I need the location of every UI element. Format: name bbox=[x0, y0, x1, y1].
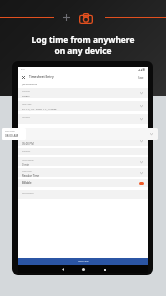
staticText: Job Reference bbox=[22, 83, 38, 86]
staticText: 9:41 bbox=[21, 68, 25, 71]
staticText: Start Time bbox=[5, 130, 15, 133]
staticText: Log time from anywhere on any device bbox=[0, 34, 166, 56]
button[interactable]: Close bbox=[21, 75, 26, 80]
button[interactable]: Payment bbox=[18, 148, 148, 155]
button[interactable]: Location bbox=[18, 114, 148, 124]
staticText: Location bbox=[22, 116, 31, 119]
staticText: Contract bbox=[22, 90, 31, 93]
button[interactable]: End Time bbox=[18, 136, 148, 146]
button[interactable]: Time Type bbox=[18, 168, 148, 177]
staticText: 05:00 PM bbox=[22, 142, 34, 146]
other: Camera bbox=[79, 13, 93, 24]
staticText: Payment bbox=[22, 150, 31, 153]
button[interactable]: Home bbox=[80, 266, 87, 273]
staticText: Timesheet Entry bbox=[29, 75, 54, 79]
staticText: Wheel bbox=[22, 94, 30, 97]
staticText: 0 min bbox=[22, 163, 30, 166]
staticText: Billable bbox=[22, 181, 32, 185]
button[interactable]: Contract bbox=[18, 88, 148, 98]
staticText: 01-1-4_1.0 - Floor 1 A_1 Forge bbox=[22, 107, 57, 110]
button[interactable]: Lunch Break bbox=[18, 157, 148, 166]
staticText: Description bbox=[22, 192, 34, 195]
staticText: Time Type bbox=[22, 170, 32, 173]
staticText: Regular Time bbox=[22, 174, 40, 177]
button[interactable]: Back bbox=[59, 266, 66, 273]
button[interactable]: Task Code bbox=[18, 101, 148, 111]
button[interactable]: Save bbox=[138, 76, 144, 79]
staticText: Task Code bbox=[22, 103, 32, 106]
button[interactable]: Description bbox=[18, 190, 148, 199]
staticText: End Time bbox=[22, 138, 31, 141]
staticText: Lunch Break bbox=[22, 159, 34, 162]
button[interactable]: Billable bbox=[18, 179, 148, 187]
button[interactable]: Recents bbox=[101, 266, 108, 273]
staticText: 08:00 AM bbox=[5, 134, 19, 138]
button[interactable]: ADD LINE bbox=[18, 258, 148, 265]
staticText: ADD LINE bbox=[78, 260, 89, 263]
